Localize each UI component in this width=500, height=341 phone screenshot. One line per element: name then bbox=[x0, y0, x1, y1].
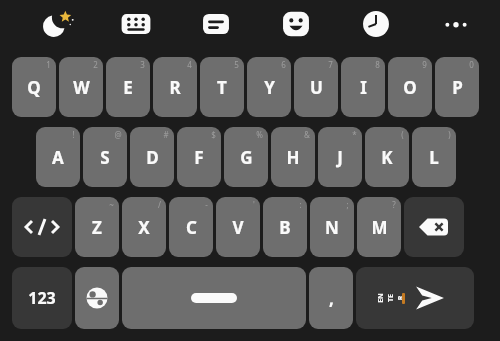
staticText: 0 bbox=[469, 59, 474, 70]
staticText: - bbox=[205, 199, 208, 210]
staticText: 123 bbox=[28, 287, 56, 309]
staticText: X bbox=[138, 216, 150, 239]
button[interactable]: @ bbox=[83, 127, 127, 187]
staticText: L bbox=[429, 146, 439, 169]
button[interactable]: ( bbox=[365, 127, 409, 187]
staticText: P bbox=[452, 76, 463, 99]
button[interactable]: Night mode bbox=[38, 6, 74, 42]
staticText: J bbox=[337, 146, 343, 169]
button[interactable]: 0 bbox=[435, 57, 479, 117]
staticText: Y bbox=[264, 76, 275, 99]
staticText: F bbox=[194, 146, 204, 169]
button[interactable]: - bbox=[169, 197, 213, 257]
staticText: B bbox=[279, 216, 291, 239]
staticText: E bbox=[123, 76, 133, 99]
staticText: R bbox=[169, 76, 181, 99]
staticText: @ bbox=[114, 129, 122, 140]
button[interactable]: Text shortcuts bbox=[198, 6, 234, 42]
staticText: ; bbox=[346, 199, 349, 210]
button[interactable]: Emoji bbox=[278, 6, 314, 42]
button[interactable]: 9 bbox=[388, 57, 432, 117]
button[interactable]: % bbox=[224, 127, 268, 187]
button[interactable]: 4 bbox=[153, 57, 197, 117]
staticText: G bbox=[240, 146, 253, 169]
staticText: $ bbox=[211, 129, 216, 140]
staticText: % bbox=[256, 129, 263, 140]
staticText: * bbox=[352, 129, 357, 140]
staticText: ? bbox=[392, 199, 396, 210]
staticText: : bbox=[299, 199, 302, 210]
staticText: W bbox=[73, 76, 90, 99]
staticText: H bbox=[286, 146, 300, 169]
staticText: K bbox=[381, 146, 393, 169]
button[interactable]: & bbox=[271, 127, 315, 187]
button[interactable]: Recent bbox=[358, 6, 394, 42]
button[interactable]: ? bbox=[357, 197, 401, 257]
button[interactable]: # bbox=[130, 127, 174, 187]
button[interactable]: More options bbox=[438, 6, 474, 42]
staticText: 2 bbox=[93, 59, 98, 70]
button[interactable]: / bbox=[122, 197, 166, 257]
staticText: / bbox=[158, 199, 161, 210]
button[interactable]: Symbols bbox=[12, 197, 72, 257]
button[interactable]: $ bbox=[177, 127, 221, 187]
staticText: , bbox=[329, 287, 334, 310]
staticText: ! bbox=[72, 129, 75, 140]
staticText: M bbox=[371, 216, 388, 239]
staticText: ) bbox=[448, 129, 451, 140]
staticText: U bbox=[310, 76, 323, 99]
staticText: 1 bbox=[46, 59, 51, 70]
staticText: N bbox=[325, 216, 339, 239]
button[interactable]: ) bbox=[412, 127, 456, 187]
button[interactable]: ! bbox=[36, 127, 80, 187]
staticText: ~ bbox=[109, 199, 114, 210]
button[interactable]: 6 bbox=[247, 57, 291, 117]
staticText: 3 bbox=[140, 59, 145, 70]
button[interactable]: : bbox=[263, 197, 307, 257]
staticText: 6 bbox=[281, 59, 286, 70]
staticText: 4 bbox=[187, 59, 192, 70]
staticText: S bbox=[100, 146, 110, 169]
button[interactable]: 8 bbox=[341, 57, 385, 117]
staticText: Q bbox=[27, 76, 41, 99]
button[interactable]: Enter bbox=[356, 267, 474, 329]
button[interactable]: 123 bbox=[12, 267, 72, 329]
staticText: 7 bbox=[328, 59, 333, 70]
staticText: Z bbox=[92, 216, 102, 239]
button[interactable]: ; bbox=[310, 197, 354, 257]
staticText: ' bbox=[253, 199, 255, 210]
button[interactable]: 7 bbox=[294, 57, 338, 117]
staticText: I bbox=[360, 76, 367, 99]
button[interactable]: 1 bbox=[12, 57, 56, 117]
button[interactable]: Change language bbox=[75, 267, 119, 329]
button[interactable]: , bbox=[309, 267, 353, 329]
staticText: V bbox=[232, 216, 244, 239]
staticText: D bbox=[146, 146, 159, 169]
staticText: 5 bbox=[234, 59, 239, 70]
staticText: ENTER bbox=[376, 292, 406, 304]
button[interactable]: Backspace bbox=[404, 197, 464, 257]
staticText: O bbox=[403, 76, 417, 99]
staticText: T bbox=[217, 76, 227, 99]
button[interactable]: Space bbox=[122, 267, 306, 329]
staticText: # bbox=[163, 129, 169, 140]
button[interactable]: 5 bbox=[200, 57, 244, 117]
button[interactable]: ' bbox=[216, 197, 260, 257]
button[interactable]: 3 bbox=[106, 57, 150, 117]
staticText: & bbox=[304, 129, 310, 140]
staticText: ( bbox=[401, 129, 404, 140]
button[interactable]: Keyboard layout bbox=[118, 6, 154, 42]
staticText: 9 bbox=[422, 59, 427, 70]
button[interactable]: * bbox=[318, 127, 362, 187]
staticText: A bbox=[52, 146, 64, 169]
button[interactable]: ~ bbox=[75, 197, 119, 257]
staticText: C bbox=[186, 216, 197, 239]
staticText: 8 bbox=[375, 59, 380, 70]
button[interactable]: 2 bbox=[59, 57, 103, 117]
